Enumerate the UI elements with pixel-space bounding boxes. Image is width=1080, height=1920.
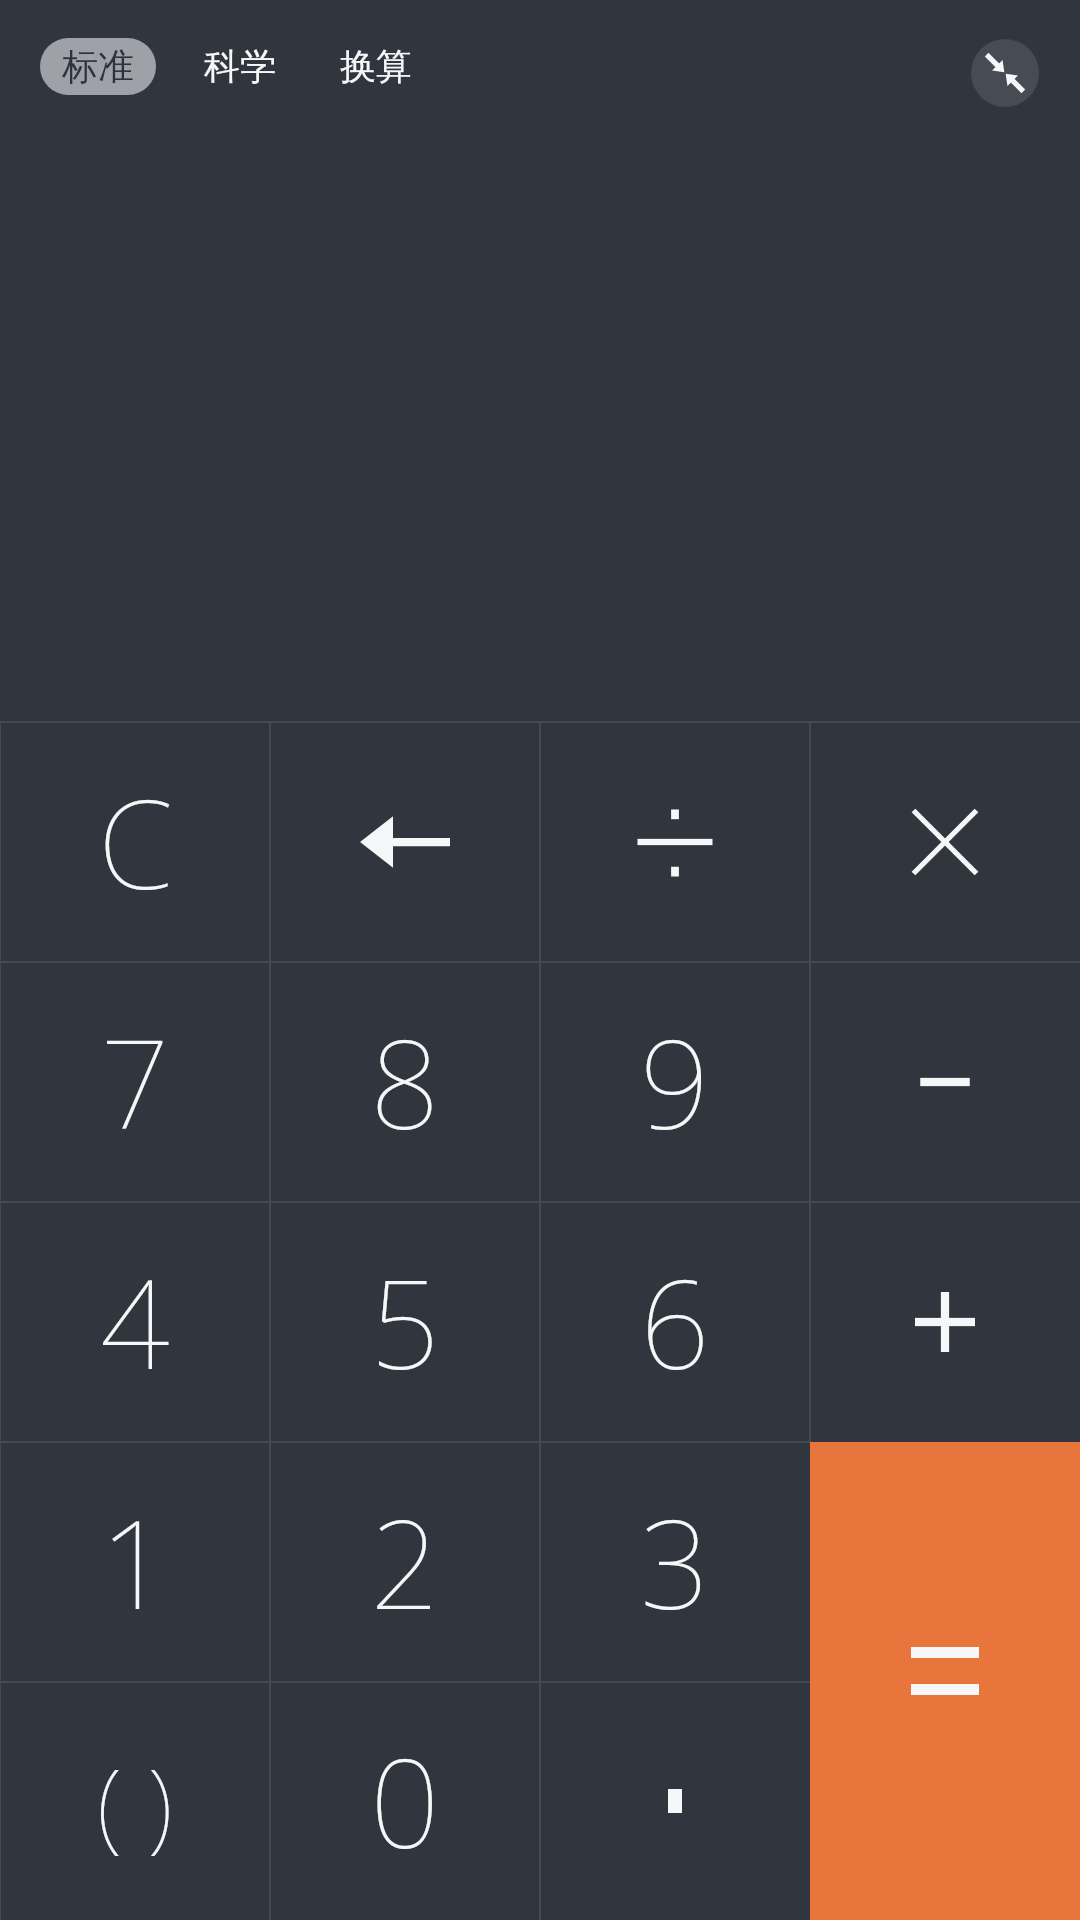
button[interactable]: ( ) — [0, 1682, 270, 1920]
button[interactable]: 换算 — [324, 38, 428, 95]
button[interactable]: 1 — [0, 1442, 270, 1682]
button[interactable]: 6 — [540, 1202, 810, 1442]
staticText: 科学 — [204, 44, 276, 89]
staticText: 6 — [640, 1239, 710, 1405]
button[interactable]: 5 — [270, 1202, 540, 1442]
button[interactable]: 7 — [0, 962, 270, 1202]
button[interactable]: C — [0, 722, 270, 962]
staticText: 9 — [640, 999, 710, 1165]
staticText: 5 — [370, 1239, 440, 1405]
staticText: 8 — [370, 999, 440, 1165]
button[interactable]: 8 — [270, 962, 540, 1202]
button[interactable]: Minus — [810, 962, 1080, 1202]
staticText: 2 — [370, 1479, 440, 1645]
staticText: ( ) — [97, 1735, 173, 1868]
staticText: C — [98, 759, 173, 925]
button[interactable]: 9 — [540, 962, 810, 1202]
button[interactable]: 3 — [540, 1442, 810, 1682]
staticText: 1 — [100, 1479, 170, 1645]
button[interactable]: Plus — [810, 1202, 1080, 1442]
button[interactable]: Collapse — [971, 39, 1039, 107]
button[interactable]: 标准 — [40, 38, 156, 95]
button[interactable]: 2 — [270, 1442, 540, 1682]
staticText: 换算 — [340, 44, 412, 89]
staticText: 标准 — [62, 44, 134, 89]
staticText: 3 — [640, 1479, 710, 1645]
staticText: 0 — [370, 1718, 440, 1884]
button[interactable]: Decimal point — [540, 1682, 810, 1920]
staticText: 4 — [100, 1239, 170, 1405]
button[interactable]: Backspace — [270, 722, 540, 962]
button[interactable]: Multiply — [810, 722, 1080, 962]
button[interactable]: 4 — [0, 1202, 270, 1442]
button[interactable]: 0 — [270, 1682, 540, 1920]
staticText: 7 — [100, 999, 170, 1165]
button[interactable]: Divide — [540, 722, 810, 962]
button[interactable]: Equals — [810, 1442, 1080, 1920]
button[interactable]: 科学 — [188, 38, 292, 95]
